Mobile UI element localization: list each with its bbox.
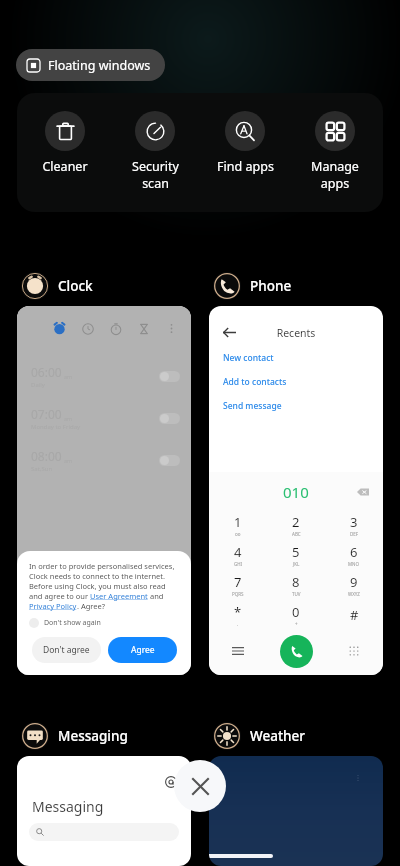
button[interactable]: Search (29, 823, 179, 841)
staticText: Manage apps (311, 158, 359, 192)
staticText: Cleaner (42, 158, 88, 175)
staticText: In order to provide personalised service… (29, 561, 175, 571)
staticText: . (237, 621, 239, 627)
button[interactable]: Keypad (325, 630, 383, 672)
button[interactable]: Call (280, 635, 313, 668)
button[interactable]: 6 (325, 540, 383, 570)
staticText: DEF (350, 531, 359, 537)
button[interactable]: * (209, 600, 267, 630)
button[interactable]: Send message (223, 400, 282, 412)
button[interactable]: 5 (267, 540, 325, 570)
button[interactable]: Back (223, 326, 236, 339)
staticText: TUV (292, 591, 301, 597)
staticText: 07:00 (31, 406, 62, 422)
button[interactable]: 1 (209, 510, 267, 540)
staticText: Clock needs to connect to the internet. (29, 571, 166, 581)
button[interactable]: New contact (223, 352, 274, 364)
staticText: GHI (234, 561, 243, 567)
staticText: Add to contacts (223, 376, 287, 388)
staticText: New contact (223, 352, 274, 364)
button[interactable]: Manage apps (293, 111, 377, 192)
button[interactable]: Floating windows (16, 49, 165, 81)
staticText: User Agreement (90, 591, 148, 601)
button[interactable]: Add to contacts (223, 376, 287, 388)
staticText: Floating windows (48, 57, 151, 74)
staticText: 08:00 (31, 448, 62, 464)
staticText: oo (235, 531, 241, 537)
button[interactable]: Phone (213, 272, 292, 300)
staticText: Before using Clock, you must also read (29, 581, 166, 591)
staticText: and agree to our (29, 591, 90, 601)
button[interactable]: Back (209, 306, 383, 675)
button[interactable]: Weather (213, 722, 305, 750)
staticText: 010 (283, 482, 309, 502)
staticText: Clock (58, 277, 93, 295)
button[interactable]: 9 (325, 570, 383, 600)
button[interactable]: Don't agree (32, 637, 101, 663)
staticText: Messaging (58, 727, 128, 745)
button[interactable]: 7 (209, 570, 267, 600)
button[interactable] (29, 618, 39, 628)
staticText: PQRS (232, 591, 244, 597)
button[interactable]: Backspace (357, 486, 369, 498)
staticText: 3 (350, 513, 358, 531)
staticText: JKL (293, 561, 300, 567)
staticText: Send message (223, 400, 282, 412)
staticText: 8 (292, 573, 300, 591)
button[interactable]: Agree (108, 637, 177, 663)
staticText: Privacy Policy (29, 601, 77, 611)
staticText: Find apps (217, 158, 274, 175)
button[interactable] (209, 756, 383, 866)
staticText: 06:00 (31, 364, 62, 380)
button[interactable]: Clock (21, 272, 93, 300)
button[interactable]: 06:00 (17, 306, 191, 675)
button[interactable]: Security scan (113, 111, 197, 192)
button[interactable]: Close all (174, 760, 226, 812)
staticText: 1 (234, 513, 242, 531)
button[interactable]: Cleaner (23, 111, 107, 175)
staticText: # (350, 606, 359, 624)
staticText: MNO (348, 561, 360, 567)
staticText: 4 (234, 543, 242, 561)
staticText: ABC (292, 531, 301, 537)
staticText: . Agree? (77, 601, 106, 611)
staticText: 9 (350, 573, 358, 591)
staticText: and (148, 591, 164, 601)
button[interactable]: Profile (165, 776, 177, 788)
button[interactable]: 3 (325, 510, 383, 540)
button[interactable]: Messaging (21, 722, 128, 750)
staticText: Don't show again (44, 618, 101, 628)
staticText: 2 (292, 513, 300, 531)
staticText: + (295, 621, 298, 627)
button[interactable]: 4 (209, 540, 267, 570)
staticText: 6 (350, 543, 358, 561)
staticText: WXYZ (348, 591, 360, 597)
staticText: Don't agree (43, 644, 90, 656)
staticText: 0 (292, 603, 300, 621)
staticText: * (234, 603, 242, 621)
button[interactable]: Profile (17, 756, 191, 866)
button[interactable]: Menu (209, 630, 267, 672)
staticText: Phone (250, 277, 292, 295)
staticText: Recents (209, 326, 383, 340)
button[interactable]: 8 (267, 570, 325, 600)
button[interactable]: # (325, 600, 383, 630)
button[interactable]: Find apps (203, 111, 287, 175)
button[interactable]: 2 (267, 510, 325, 540)
button[interactable]: 0 (267, 600, 325, 630)
staticText: 7 (234, 573, 242, 591)
staticText: Agree (131, 644, 155, 656)
staticText: Messaging (32, 797, 104, 816)
staticText: Weather (250, 727, 305, 745)
staticText: Security scan (132, 158, 179, 192)
staticText: 5 (292, 543, 300, 561)
